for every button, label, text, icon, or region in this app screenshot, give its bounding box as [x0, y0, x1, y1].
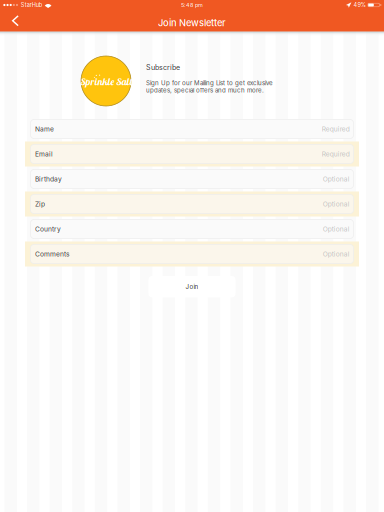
staticText: Subscribe	[146, 63, 180, 72]
button[interactable]: Back	[0, 10, 29, 31]
staticText: Join Newsletter	[158, 17, 226, 28]
button[interactable]: Zip	[25, 191, 359, 216]
staticText: Optional	[323, 175, 350, 183]
staticText: Join	[185, 283, 198, 290]
staticText: Comments	[35, 250, 70, 258]
button[interactable]: Birthday	[25, 166, 359, 191]
button[interactable]: Name	[25, 116, 359, 141]
staticText: Sprinkle Salt	[80, 75, 132, 88]
staticText: Zip	[35, 200, 45, 208]
staticText: Name	[35, 125, 54, 133]
staticText: 49%	[353, 2, 365, 8]
button[interactable]: Comments	[25, 241, 359, 266]
staticText: Sign Up for our Mailing List to get excl…	[146, 79, 273, 94]
staticText: Required	[322, 150, 350, 158]
button[interactable]: Email	[25, 141, 359, 166]
button[interactable]: Country	[25, 216, 359, 241]
staticText: Country	[35, 225, 61, 233]
staticText: Required	[322, 125, 350, 133]
staticText: StarHub	[21, 2, 42, 8]
button[interactable]: Join	[148, 276, 235, 297]
staticText: Optional	[323, 200, 350, 208]
staticText: Email	[35, 150, 53, 158]
staticText: Optional	[323, 250, 350, 258]
staticText: 5:48 pm	[181, 2, 203, 8]
staticText: Birthday	[35, 175, 62, 183]
staticText: Optional	[323, 225, 350, 233]
